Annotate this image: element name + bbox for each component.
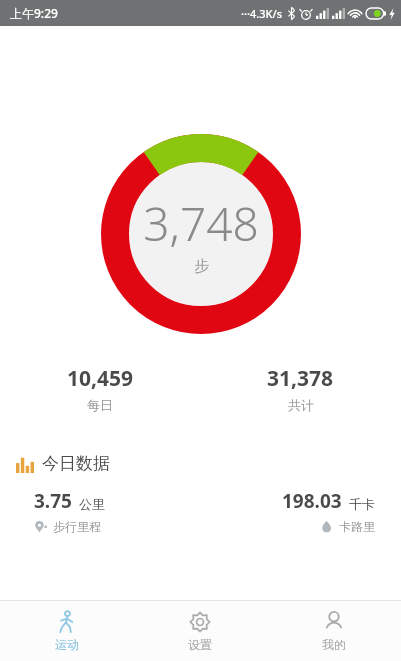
staticText: 共计 bbox=[288, 397, 314, 413]
button[interactable]: 198.03 bbox=[200, 488, 401, 534]
staticText: 上午9:29 bbox=[10, 5, 58, 21]
staticText: 运动 bbox=[55, 637, 79, 652]
other: 我的 bbox=[322, 610, 346, 634]
button[interactable]: 运动 bbox=[0, 604, 133, 658]
staticText: 今日数据 bbox=[42, 453, 110, 474]
staticText: 10,459 bbox=[67, 364, 134, 393]
staticText: 31,378 bbox=[267, 364, 334, 393]
staticText: ···4.3K/s bbox=[241, 6, 283, 21]
button[interactable]: 3.75 bbox=[0, 488, 200, 534]
staticText: 3.75 bbox=[34, 488, 72, 514]
other: 设置 bbox=[188, 610, 212, 634]
staticText: 3,748 bbox=[143, 192, 259, 255]
button[interactable]: 10,459 bbox=[0, 364, 200, 413]
staticText: 卡路里 bbox=[339, 519, 375, 534]
staticText: 设置 bbox=[188, 637, 212, 652]
other: 运动 bbox=[55, 610, 79, 634]
button[interactable]: 31,378 bbox=[200, 364, 401, 413]
staticText: 步 bbox=[194, 257, 209, 276]
staticText: 198.03 bbox=[282, 488, 342, 514]
button[interactable]: 我的 bbox=[267, 604, 401, 658]
staticText: 每日 bbox=[87, 397, 113, 413]
staticText: 公里 bbox=[79, 496, 105, 512]
button[interactable]: 设置 bbox=[133, 604, 267, 658]
staticText: 我的 bbox=[322, 637, 346, 652]
staticText: 千卡 bbox=[349, 496, 375, 512]
staticText: 步行里程 bbox=[53, 519, 101, 534]
